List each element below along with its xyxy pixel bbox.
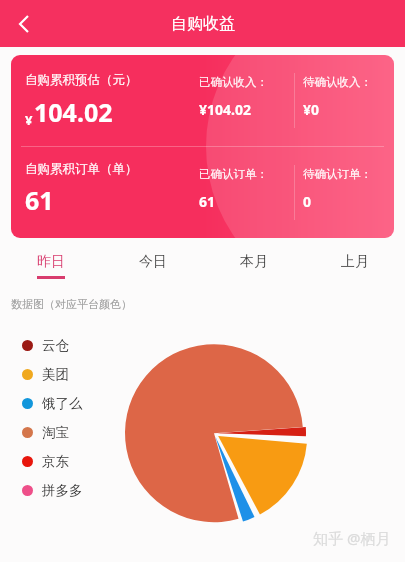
button[interactable]: 拼多多 bbox=[22, 476, 83, 505]
staticText: 数据图（对应平台颜色） bbox=[11, 297, 132, 311]
button[interactable]: 美团 bbox=[22, 360, 69, 389]
staticText: 京东 bbox=[42, 453, 69, 470]
staticText: 本月 bbox=[240, 253, 268, 271]
button[interactable]: 淘宝 bbox=[22, 418, 69, 447]
staticText: 自购累积预估（元） bbox=[25, 72, 138, 88]
staticText: 今日 bbox=[139, 253, 167, 271]
staticText: 自购累积订单（单） bbox=[25, 161, 138, 177]
staticText: 61 bbox=[199, 192, 216, 211]
button[interactable]: 昨日 bbox=[0, 247, 102, 285]
staticText: 知乎 @栖月 bbox=[313, 528, 391, 548]
staticText: 拼多多 bbox=[42, 482, 83, 499]
staticText: 自购收益 bbox=[171, 14, 235, 34]
staticText: 待确认收入： bbox=[303, 75, 372, 89]
staticText: 61 bbox=[25, 183, 54, 217]
staticText: ¥104.02 bbox=[199, 100, 251, 119]
staticText: 饿了么 bbox=[42, 395, 83, 412]
button[interactable]: 京东 bbox=[22, 447, 69, 476]
staticText: 待确认订单： bbox=[303, 167, 372, 181]
staticText: 云仓 bbox=[42, 337, 69, 354]
button[interactable]: 本月 bbox=[203, 247, 304, 285]
staticText: 上月 bbox=[341, 253, 369, 271]
staticText: ¥0 bbox=[303, 100, 320, 119]
button[interactable]: 云仓 bbox=[22, 331, 69, 360]
staticText: 已确认收入： bbox=[199, 75, 268, 89]
button[interactable]: 饿了么 bbox=[22, 389, 83, 418]
staticText: 0 bbox=[303, 192, 312, 211]
staticText: ¥ bbox=[25, 111, 33, 129]
staticText: 昨日 bbox=[37, 253, 65, 271]
staticText: 美团 bbox=[42, 366, 69, 383]
staticText: 已确认订单： bbox=[199, 167, 268, 181]
button[interactable]: Back bbox=[6, 6, 42, 42]
button[interactable]: 上月 bbox=[304, 247, 405, 285]
staticText: 淘宝 bbox=[42, 424, 69, 441]
button[interactable]: 自购累积预估（元） bbox=[11, 55, 394, 238]
staticText: 104.02 bbox=[34, 95, 113, 129]
button[interactable]: 今日 bbox=[102, 247, 203, 285]
